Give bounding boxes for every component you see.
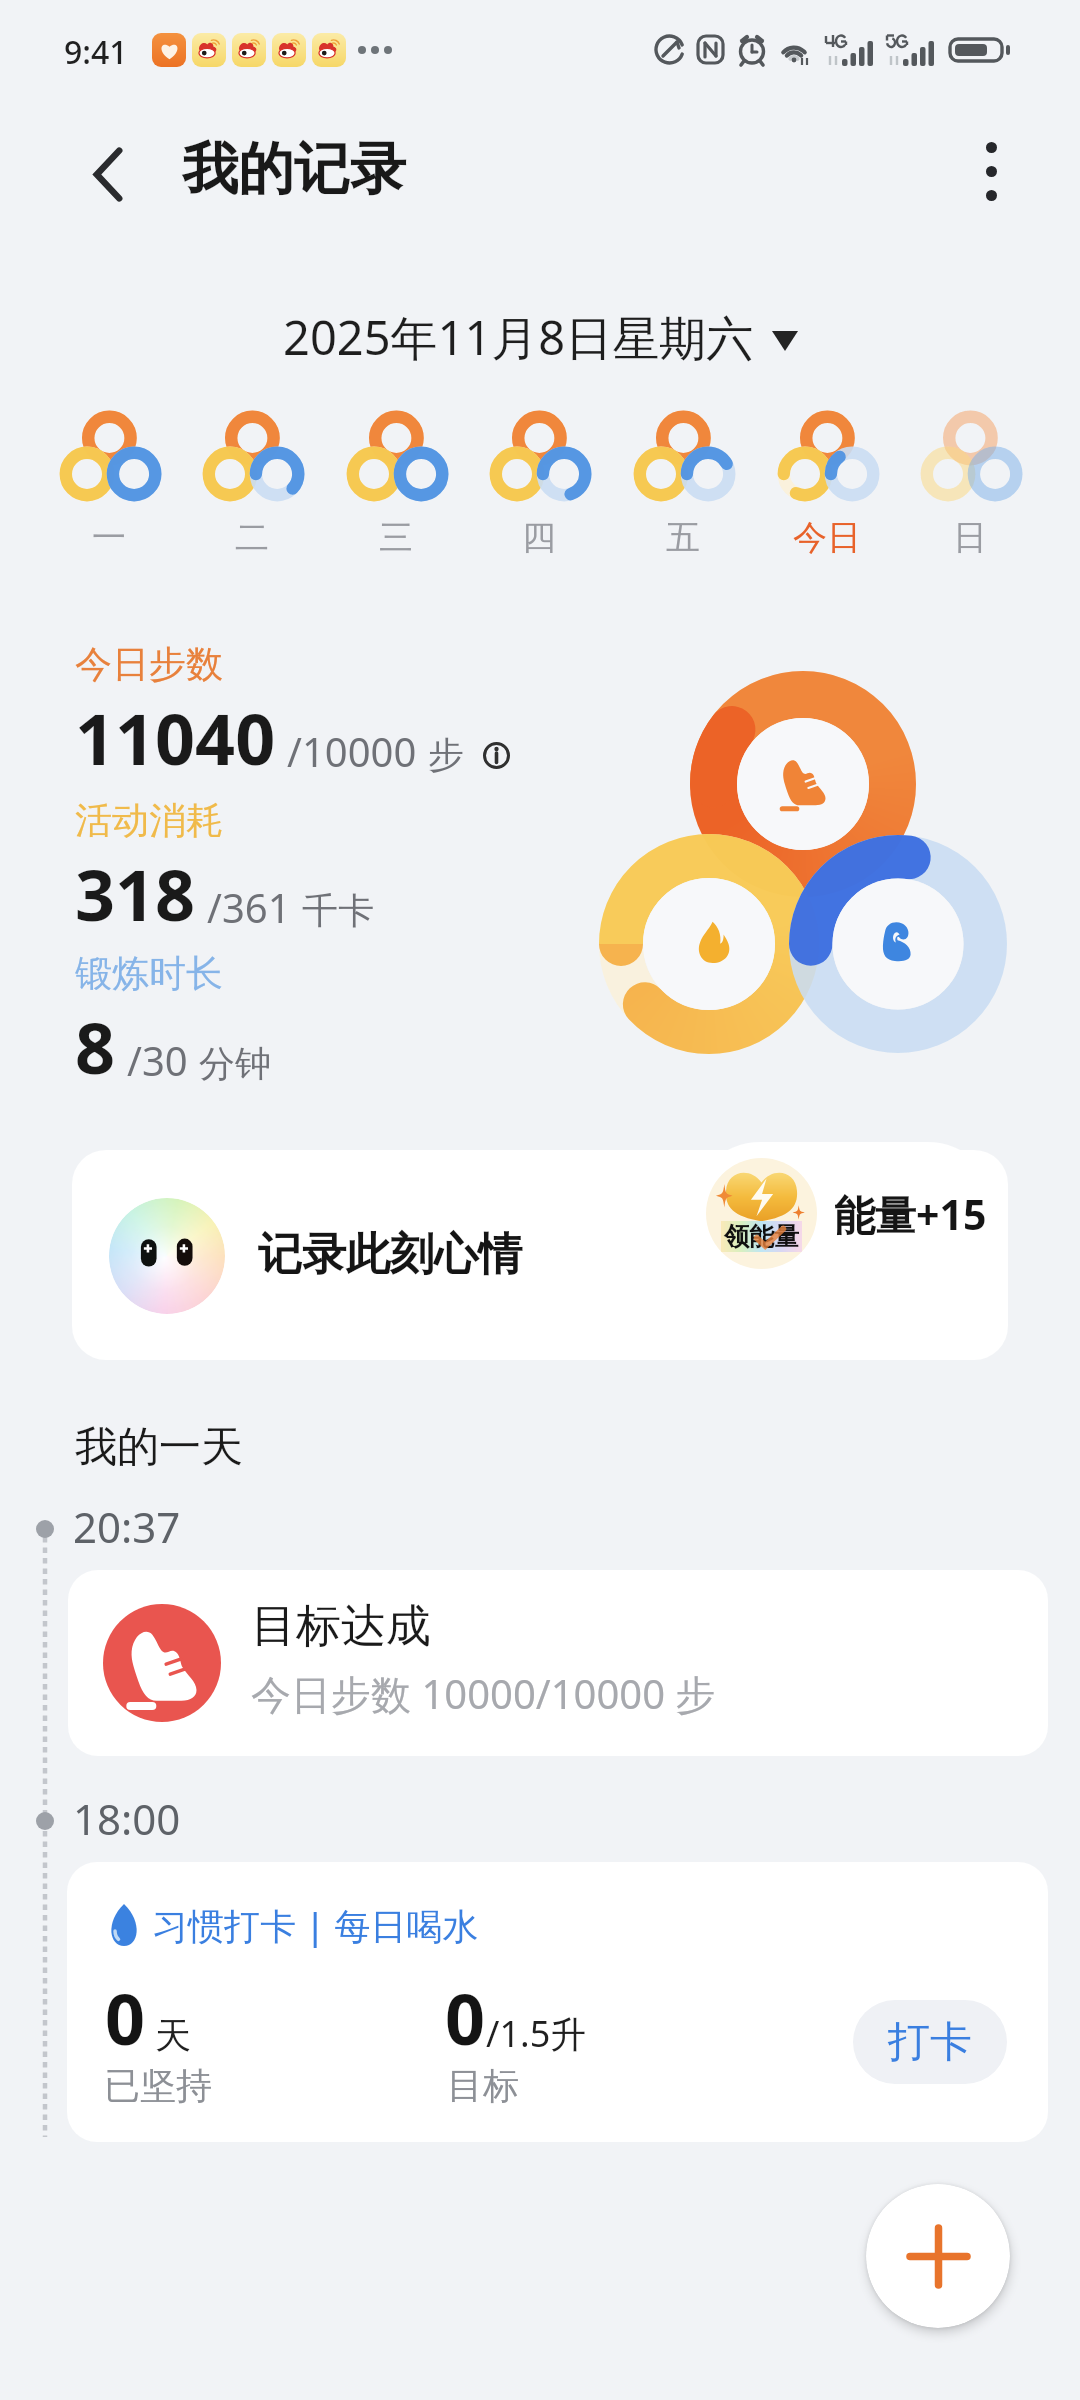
staticText: 记录此刻心情 — [258, 1227, 522, 1282]
button[interactable]: More options — [948, 128, 1034, 214]
button[interactable]: 日 — [902, 400, 1038, 572]
button[interactable]: Back — [62, 128, 154, 220]
button[interactable]: Info — [478, 737, 514, 773]
button[interactable]: 记录此刻心情 — [72, 1150, 1008, 1360]
staticText: 打卡 — [888, 2016, 972, 2069]
staticText: 五 — [666, 516, 700, 559]
button[interactable]: 三 — [328, 400, 464, 572]
staticText: /1.5升 — [486, 2009, 587, 2058]
staticText: 日 — [953, 516, 987, 559]
staticText: 天 — [155, 2013, 191, 2058]
staticText: 已坚持 — [104, 2063, 212, 2108]
staticText: 四 — [522, 516, 556, 559]
staticText: 分钟 — [199, 1041, 271, 1086]
staticText: 9:41 — [64, 30, 128, 74]
staticText: 18:00 — [73, 1790, 181, 1847]
button[interactable]: 2025年11月8日星期六 — [273, 299, 808, 375]
staticText: 11040 — [75, 690, 276, 785]
staticText: 0 — [445, 1970, 486, 2065]
staticText: /30 — [127, 1033, 188, 1087]
staticText: 我的记录 — [182, 134, 406, 205]
staticText: /361 — [207, 880, 291, 934]
staticText: 能量+15 — [834, 1186, 987, 1242]
staticText: 领能量 — [724, 1221, 799, 1252]
button[interactable]: 今日 — [759, 400, 895, 572]
staticText: 2025年11月8日星期六 — [283, 305, 754, 369]
staticText: 今日步数 — [75, 641, 223, 688]
button[interactable]: 目标达成 — [68, 1570, 1048, 1756]
button[interactable]: Add record — [866, 2184, 1010, 2328]
staticText: 二 — [235, 516, 269, 559]
staticText: 我的一天 — [75, 1421, 243, 1474]
staticText: 一 — [92, 516, 126, 559]
staticText: 活动消耗 — [75, 797, 223, 844]
staticText: 目标 — [447, 2063, 519, 2108]
button[interactable]: 打卡 — [853, 2000, 1007, 2084]
staticText: 今日 — [793, 516, 861, 559]
button[interactable]: 二 — [184, 400, 320, 572]
button[interactable]: 领能量 — [689, 1142, 999, 1285]
staticText: 三 — [379, 516, 413, 559]
staticText: 步 — [428, 732, 464, 777]
staticText: 20:37 — [73, 1498, 181, 1555]
staticText: 0 — [105, 1970, 146, 2065]
button[interactable]: 五 — [615, 400, 751, 572]
staticText: 目标达成 — [251, 1598, 431, 1655]
button[interactable]: 四 — [471, 400, 607, 572]
staticText: 千卡 — [302, 888, 374, 933]
staticText: 318 — [75, 846, 196, 941]
staticText: 今日步数 10000/10000 步 — [251, 1666, 716, 1721]
staticText: 锻炼时长 — [75, 950, 223, 997]
button[interactable]: Activity rings — [580, 650, 1030, 1075]
button[interactable]: 习惯打卡 | 每日喝水 — [67, 1862, 1048, 2142]
staticText: 习惯打卡 | 每日喝水 — [152, 1901, 479, 1950]
staticText: /10000 — [287, 724, 417, 778]
staticText: 8 — [75, 999, 116, 1094]
button[interactable]: 一 — [41, 400, 177, 572]
